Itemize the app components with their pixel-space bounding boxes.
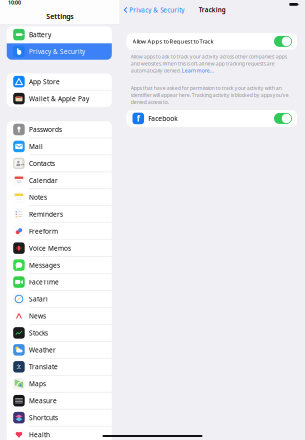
staticText: identifier will appear here. Tracking ac… [131, 92, 289, 98]
staticText: and websites. When this is off, all new … [131, 60, 275, 67]
staticText: Measure [29, 396, 57, 405]
staticText: Translate [29, 362, 58, 371]
staticText: Health [29, 430, 50, 439]
button[interactable]: Wallet & Apple Pay [7, 90, 112, 107]
button[interactable]: Facebook tracking [274, 113, 292, 124]
staticText: Messages [29, 261, 60, 270]
staticText: Allow Apps to Request to Track [132, 37, 213, 45]
button[interactable]: Privacy & Security [7, 43, 112, 60]
staticText: Passwords [29, 125, 62, 134]
staticText: Privacy & Security [129, 6, 184, 14]
staticText: Settings [46, 11, 73, 21]
staticText: Weather [29, 345, 56, 354]
button[interactable]: Reminders [7, 206, 112, 222]
staticText: Mail [29, 142, 43, 151]
button[interactable]: Safari [7, 291, 112, 307]
staticText: FaceTime [29, 278, 59, 286]
button[interactable]: Messages [7, 257, 112, 273]
button[interactable]: Measure [7, 392, 112, 409]
staticText: Facebook [148, 114, 177, 123]
button[interactable]: Battery [7, 26, 112, 43]
button[interactable]: Weather [7, 342, 112, 358]
staticText: f [137, 112, 140, 124]
staticText: 10:00 [8, 0, 21, 6]
button[interactable]: Calendar [7, 172, 112, 188]
staticText: Freeform [29, 227, 58, 236]
staticText: Battery [29, 30, 51, 39]
staticText: Shortcuts [29, 413, 58, 422]
staticText: Reminders [29, 210, 63, 219]
button[interactable]: Freeform [7, 223, 112, 239]
button[interactable]: Privacy & Security [123, 2, 184, 18]
button[interactable]: 文 [7, 359, 112, 375]
staticText: automatically denied. [131, 67, 182, 74]
button[interactable]: Stocks [7, 325, 112, 341]
button[interactable]: Contacts [7, 155, 112, 172]
staticText: App Store [29, 77, 60, 86]
staticText: 文 [16, 364, 21, 370]
button[interactable]: App Store [7, 73, 112, 90]
staticText: Wallet & Apple Pay [29, 94, 89, 103]
button[interactable]: FaceTime [7, 274, 112, 290]
button[interactable]: Mail [7, 138, 112, 155]
staticText: Learn more… [182, 67, 214, 74]
staticText: Tracking [199, 6, 226, 14]
staticText: Apps that have asked for permission to t… [131, 85, 282, 91]
button[interactable]: Notes [7, 189, 112, 205]
staticText: Safari [29, 295, 48, 303]
button[interactable]: Maps [7, 376, 112, 392]
staticText: Voice Memos [29, 244, 71, 253]
staticText: Notes [29, 193, 47, 202]
button[interactable]: Shortcuts [7, 409, 112, 426]
staticText: Allow apps to ask to track your activity… [131, 53, 287, 60]
button[interactable]: News [7, 308, 112, 324]
staticText: denied access to. [131, 99, 169, 105]
button[interactable]: Allow Apps to Request to Track [274, 36, 292, 47]
staticText: News [29, 311, 46, 320]
staticText: Calendar [29, 176, 58, 185]
button[interactable]: Passwords [7, 121, 112, 138]
button[interactable]: Health [7, 426, 112, 440]
staticText: Contacts [29, 159, 55, 168]
button[interactable]: Learn more… [182, 67, 214, 74]
button[interactable]: Voice Memos [7, 240, 112, 256]
staticText: Maps [29, 379, 46, 388]
staticText: Privacy & Security [29, 47, 85, 56]
staticText: Stocks [29, 328, 48, 337]
